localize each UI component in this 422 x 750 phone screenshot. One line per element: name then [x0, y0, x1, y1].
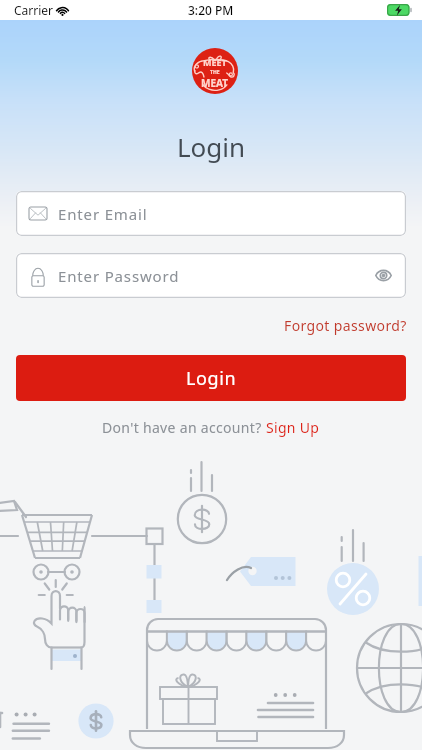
- staticText: Carrier: [14, 2, 54, 18]
- staticText: MEET: [203, 56, 227, 68]
- button[interactable]: Show password: [374, 266, 393, 285]
- staticText: Login: [0, 129, 422, 164]
- staticText: Enter Password: [58, 266, 180, 286]
- button[interactable]: Enter Password: [16, 253, 406, 298]
- staticText: Enter Email: [58, 204, 148, 224]
- button[interactable]: Login: [16, 355, 406, 401]
- staticText: Don't have an account?: [102, 418, 266, 437]
- staticText: THE: [210, 69, 220, 76]
- staticText: 3:20 PM: [188, 2, 234, 18]
- staticText: Login: [186, 366, 237, 391]
- button[interactable]: Sign Up: [266, 418, 320, 437]
- button[interactable]: Forgot password?: [284, 316, 422, 335]
- button[interactable]: Enter Email: [16, 191, 406, 236]
- staticText: MEAT: [201, 76, 229, 90]
